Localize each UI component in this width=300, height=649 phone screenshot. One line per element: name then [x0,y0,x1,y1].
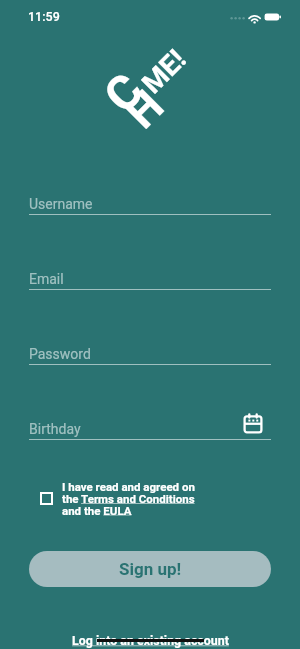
button[interactable]: Birthday [29,404,271,440]
staticText: H [115,79,175,139]
button[interactable]: Pick date [244,413,262,433]
staticText: ME! [135,43,193,100]
staticText: Email [29,271,64,287]
button[interactable]: Password [29,329,271,365]
staticText: Log into an existing account [72,633,229,648]
staticText: Birthday [29,421,81,437]
button[interactable]: Username [29,179,271,215]
button[interactable]: Email [29,254,271,290]
button[interactable]: Sign up! [29,551,271,587]
staticText: Username [29,196,93,212]
button[interactable]: I have read and agreed on the Terms and … [29,480,271,517]
button[interactable]: Log into an existing account [72,633,229,648]
staticText: Password [29,346,91,362]
staticText: Sign up! [119,559,182,579]
staticText: C [93,62,154,123]
staticText: 11:59 [28,9,60,24]
staticText: I have read and agreed on the Terms and … [62,480,195,517]
